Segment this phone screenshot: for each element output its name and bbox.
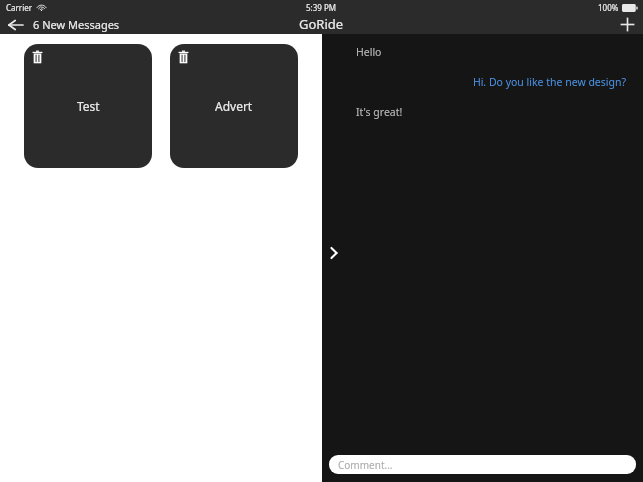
staticText: 5:39 PM bbox=[306, 2, 337, 13]
staticText: Carrier bbox=[6, 2, 33, 13]
button[interactable]: Comment... bbox=[329, 455, 636, 474]
button[interactable]: Delete bbox=[170, 44, 298, 168]
other: Back bbox=[8, 19, 23, 31]
button[interactable]: Back bbox=[0, 15, 128, 34]
button[interactable]: Expand bbox=[322, 240, 344, 266]
staticText: Test bbox=[77, 98, 100, 114]
staticText: 100% bbox=[598, 2, 619, 13]
staticText: Hi. Do you like the new design? bbox=[322, 75, 626, 89]
button[interactable]: Add bbox=[612, 15, 643, 34]
staticText: Comment... bbox=[338, 458, 393, 472]
staticText: Advert bbox=[215, 98, 253, 114]
staticText: It's great! bbox=[356, 105, 403, 119]
button[interactable]: Delete bbox=[32, 50, 43, 64]
button[interactable]: Delete bbox=[24, 44, 152, 168]
staticText: 6 New Messages bbox=[33, 17, 120, 32]
staticText: Hello bbox=[356, 45, 382, 59]
staticText: GoRide bbox=[299, 15, 344, 33]
button[interactable]: Delete bbox=[178, 50, 189, 64]
